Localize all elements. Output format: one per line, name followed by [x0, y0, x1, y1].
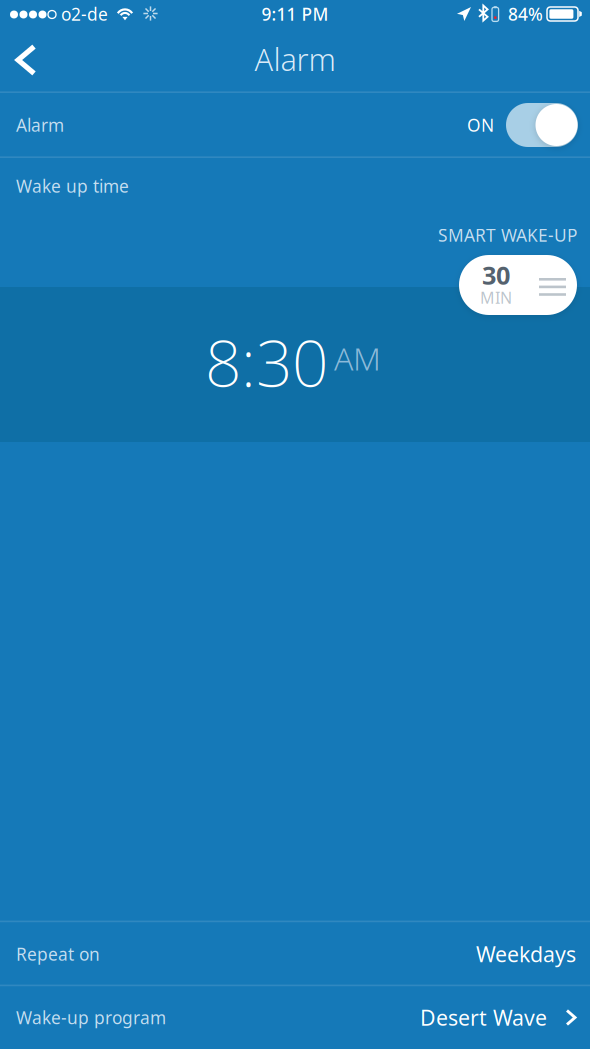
staticText: ON: [467, 113, 494, 136]
button[interactable]: Wake-up program: [0, 986, 590, 1049]
staticText: MIN: [480, 287, 512, 308]
staticText: Alarm: [16, 113, 64, 136]
staticText: SMART WAKE-UP: [438, 223, 577, 246]
staticText: o2-de: [61, 2, 108, 25]
staticText: Desert Wave: [420, 1003, 547, 1032]
staticText: Alarm: [254, 39, 335, 79]
staticText: Wake up time: [16, 174, 129, 197]
staticText: 84%: [508, 2, 543, 25]
staticText: Repeat on: [16, 942, 100, 965]
button[interactable]: 8:30: [0, 287, 590, 442]
button[interactable]: Alarm: [0, 93, 590, 157]
staticText: 30: [482, 258, 510, 292]
button[interactable]: Repeat on: [0, 922, 590, 986]
staticText: 9:11 PM: [261, 2, 328, 25]
button[interactable]: Back: [0, 33, 62, 92]
staticText: Weekdays: [476, 940, 576, 968]
staticText: Wake-up program: [16, 1006, 166, 1029]
staticText: AM: [334, 337, 381, 379]
button[interactable]: Smart wake-up window, 30 minutes: [459, 255, 577, 315]
staticText: 8:30: [205, 319, 328, 404]
